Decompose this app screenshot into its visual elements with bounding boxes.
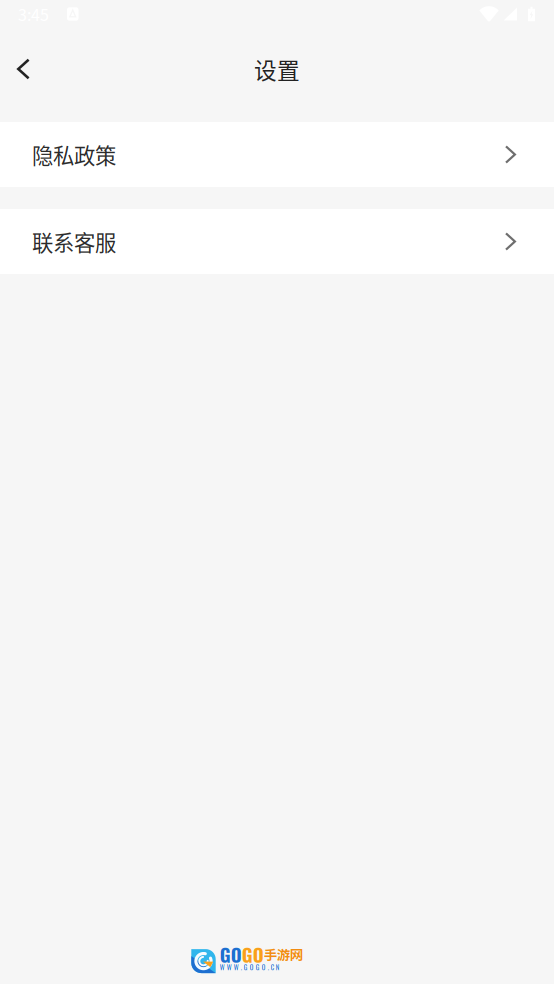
button[interactable]: 隐私政策: [0, 122, 554, 187]
button[interactable]: Back: [0, 41, 54, 97]
staticText: 手游网: [264, 945, 303, 964]
staticText: W W W . G O G O . C N: [220, 962, 280, 972]
staticText: GO: [242, 940, 264, 968]
staticText: 隐私政策: [32, 139, 116, 170]
staticText: GO: [220, 940, 242, 968]
staticText: 联系客服: [32, 226, 116, 257]
staticText: 设置: [254, 53, 300, 85]
button[interactable]: 联系客服: [0, 209, 554, 274]
